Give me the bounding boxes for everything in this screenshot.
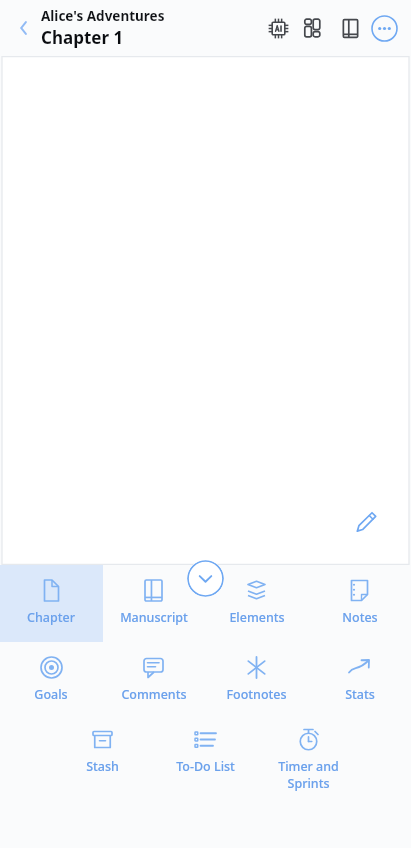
button[interactable]: Elements bbox=[205, 565, 308, 642]
button[interactable]: Goals bbox=[0, 642, 102, 714]
staticText: Alice's Adventures bbox=[41, 7, 165, 25]
button[interactable]: Notes bbox=[308, 565, 411, 642]
button[interactable]: To-Do List bbox=[154, 714, 257, 804]
button[interactable]: Footnotes bbox=[205, 642, 308, 714]
button[interactable]: Back bbox=[8, 13, 38, 43]
staticText: Manuscript bbox=[120, 609, 188, 626]
button[interactable]: Stats bbox=[308, 642, 411, 714]
button[interactable]: Book view bbox=[334, 12, 366, 44]
button[interactable]: More options bbox=[368, 12, 400, 44]
button[interactable]: Timer and Sprints bbox=[257, 714, 360, 804]
button[interactable]: Collapse panel bbox=[187, 560, 224, 597]
staticText: Stash bbox=[86, 758, 119, 775]
staticText: Comments bbox=[121, 686, 187, 703]
staticText: Timer and Sprints bbox=[278, 758, 339, 792]
button[interactable]: Stash bbox=[51, 714, 154, 804]
staticText: Footnotes bbox=[226, 686, 287, 703]
staticText: Stats bbox=[345, 686, 375, 703]
button[interactable]: Edit bbox=[339, 494, 394, 549]
button[interactable]: Comments bbox=[102, 642, 205, 714]
staticText: Elements bbox=[229, 609, 285, 626]
button[interactable]: Layout bbox=[298, 12, 330, 44]
button[interactable]: Manuscript bbox=[102, 565, 205, 642]
staticText: Notes bbox=[342, 609, 378, 626]
staticText: Chapter 1 bbox=[41, 26, 124, 49]
staticText: Goals bbox=[34, 686, 68, 703]
button[interactable]: Chapter bbox=[0, 565, 102, 642]
staticText: To-Do List bbox=[176, 758, 235, 775]
button[interactable]: AI assistant bbox=[262, 12, 294, 44]
staticText: Chapter bbox=[27, 609, 75, 626]
